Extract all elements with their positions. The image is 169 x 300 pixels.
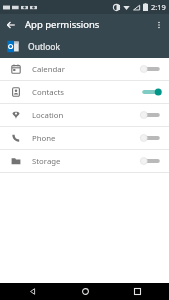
button[interactable]: More options [149, 14, 169, 35]
button[interactable]: Contacts [0, 81, 169, 103]
staticText: Outlook [28, 41, 60, 53]
staticText: Calendar [32, 64, 65, 75]
button[interactable] [140, 154, 162, 168]
staticText: Storage [32, 156, 61, 167]
button[interactable]: Back [12, 283, 52, 300]
button[interactable]: Recent apps [117, 283, 157, 300]
button[interactable]: Location [0, 104, 169, 126]
button[interactable]: Storage [0, 150, 169, 172]
staticText: 2:19 [151, 2, 166, 12]
staticText: Location [32, 110, 64, 121]
button[interactable]: Home [65, 283, 105, 300]
staticText: Phone [32, 133, 56, 144]
button[interactable]: Phone [0, 127, 169, 149]
button[interactable] [140, 131, 162, 145]
staticText: Contacts [32, 87, 64, 98]
button[interactable] [140, 85, 162, 99]
button[interactable]: Calendar [0, 58, 169, 80]
button[interactable]: Navigate up [0, 14, 22, 35]
button[interactable] [140, 62, 162, 76]
staticText: App permissions [25, 18, 100, 31]
button[interactable]: Outlook [0, 35, 169, 58]
button[interactable] [140, 108, 162, 122]
